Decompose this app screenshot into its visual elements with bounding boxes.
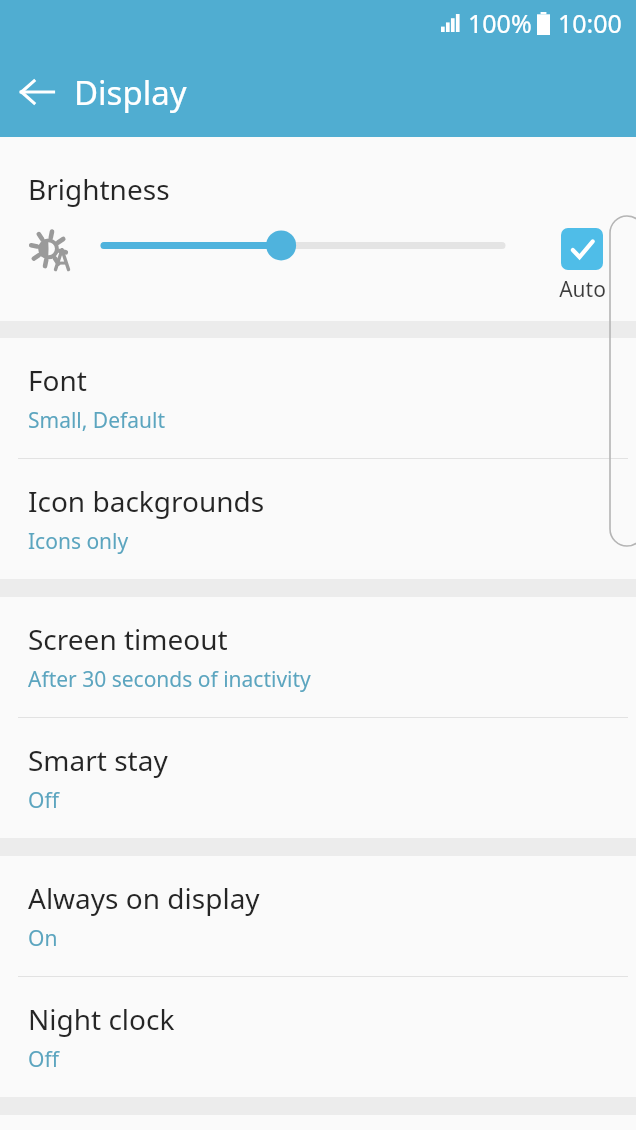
staticText: After 30 seconds of inactivity (28, 665, 311, 694)
staticText: Font (28, 361, 87, 399)
button[interactable]: Night clock (0, 977, 636, 1097)
button[interactable]: Icon backgrounds (0, 459, 636, 579)
staticText: Off (28, 786, 59, 815)
staticText: Auto (559, 275, 606, 304)
staticText: 100% (468, 6, 532, 40)
button[interactable]: Always on display (0, 856, 636, 976)
staticText: Smart stay (28, 741, 168, 779)
staticText: Always on display (28, 879, 260, 917)
staticText: Display (74, 70, 187, 115)
staticText: Brightness (28, 170, 170, 208)
button[interactable]: Brightness slider (104, 228, 512, 286)
button[interactable]: Screen timeout (0, 597, 636, 717)
button[interactable]: Auto (538, 228, 626, 304)
button[interactable]: Back (0, 63, 74, 121)
staticText: Icon backgrounds (28, 482, 265, 520)
button[interactable]: Font (0, 338, 636, 458)
button[interactable]: Smart stay (0, 718, 636, 838)
staticText: 10:00 (558, 6, 622, 40)
staticText: Small, Default (28, 406, 166, 435)
staticText: Off (28, 1045, 59, 1074)
staticText: On (28, 924, 58, 953)
staticText: Night clock (28, 1000, 175, 1038)
staticText: Screen timeout (28, 620, 228, 658)
staticText: Icons only (28, 527, 129, 556)
